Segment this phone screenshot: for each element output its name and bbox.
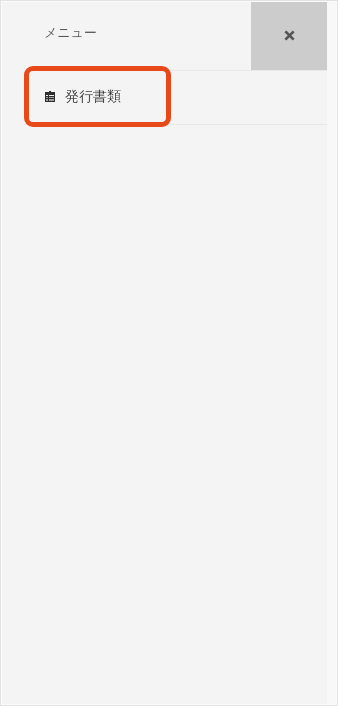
staticText: メニュー bbox=[44, 24, 97, 40]
button[interactable]: 閉じる bbox=[251, 1, 327, 71]
button[interactable]: 発行書類 bbox=[28, 70, 167, 123]
staticText: 発行書類 bbox=[65, 88, 121, 106]
